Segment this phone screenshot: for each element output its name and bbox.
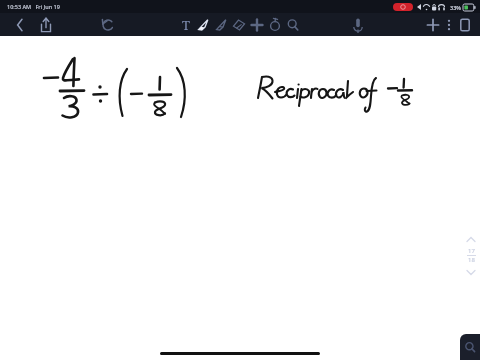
staticText: 33%: [450, 4, 461, 11]
button[interactable]: Highlighter: [194, 13, 212, 36]
button[interactable]: Eraser: [230, 13, 248, 36]
button[interactable]: Share: [36, 13, 56, 36]
staticText: T: [182, 16, 190, 34]
button[interactable]: Pen: [212, 13, 230, 36]
button[interactable]: Search: [460, 334, 480, 360]
button[interactable]: Text tool: [178, 13, 194, 36]
button[interactable]: Shapes: [266, 13, 284, 36]
button[interactable]: More options: [442, 13, 456, 36]
staticText: 17: [468, 247, 475, 255]
button[interactable]: Add: [424, 13, 442, 36]
button[interactable]: Page scrubber: [466, 236, 476, 276]
button[interactable]: Undo: [98, 13, 118, 36]
button[interactable]: Selection: [248, 13, 266, 36]
staticText: 18: [468, 256, 475, 264]
button[interactable]: Back: [10, 13, 30, 36]
button[interactable]: Microphone: [348, 13, 368, 36]
staticText: 10:53 AM Fri Jun 19: [7, 3, 60, 10]
button[interactable]: Pages: [456, 13, 474, 36]
button[interactable]: Zoom: [284, 13, 302, 36]
